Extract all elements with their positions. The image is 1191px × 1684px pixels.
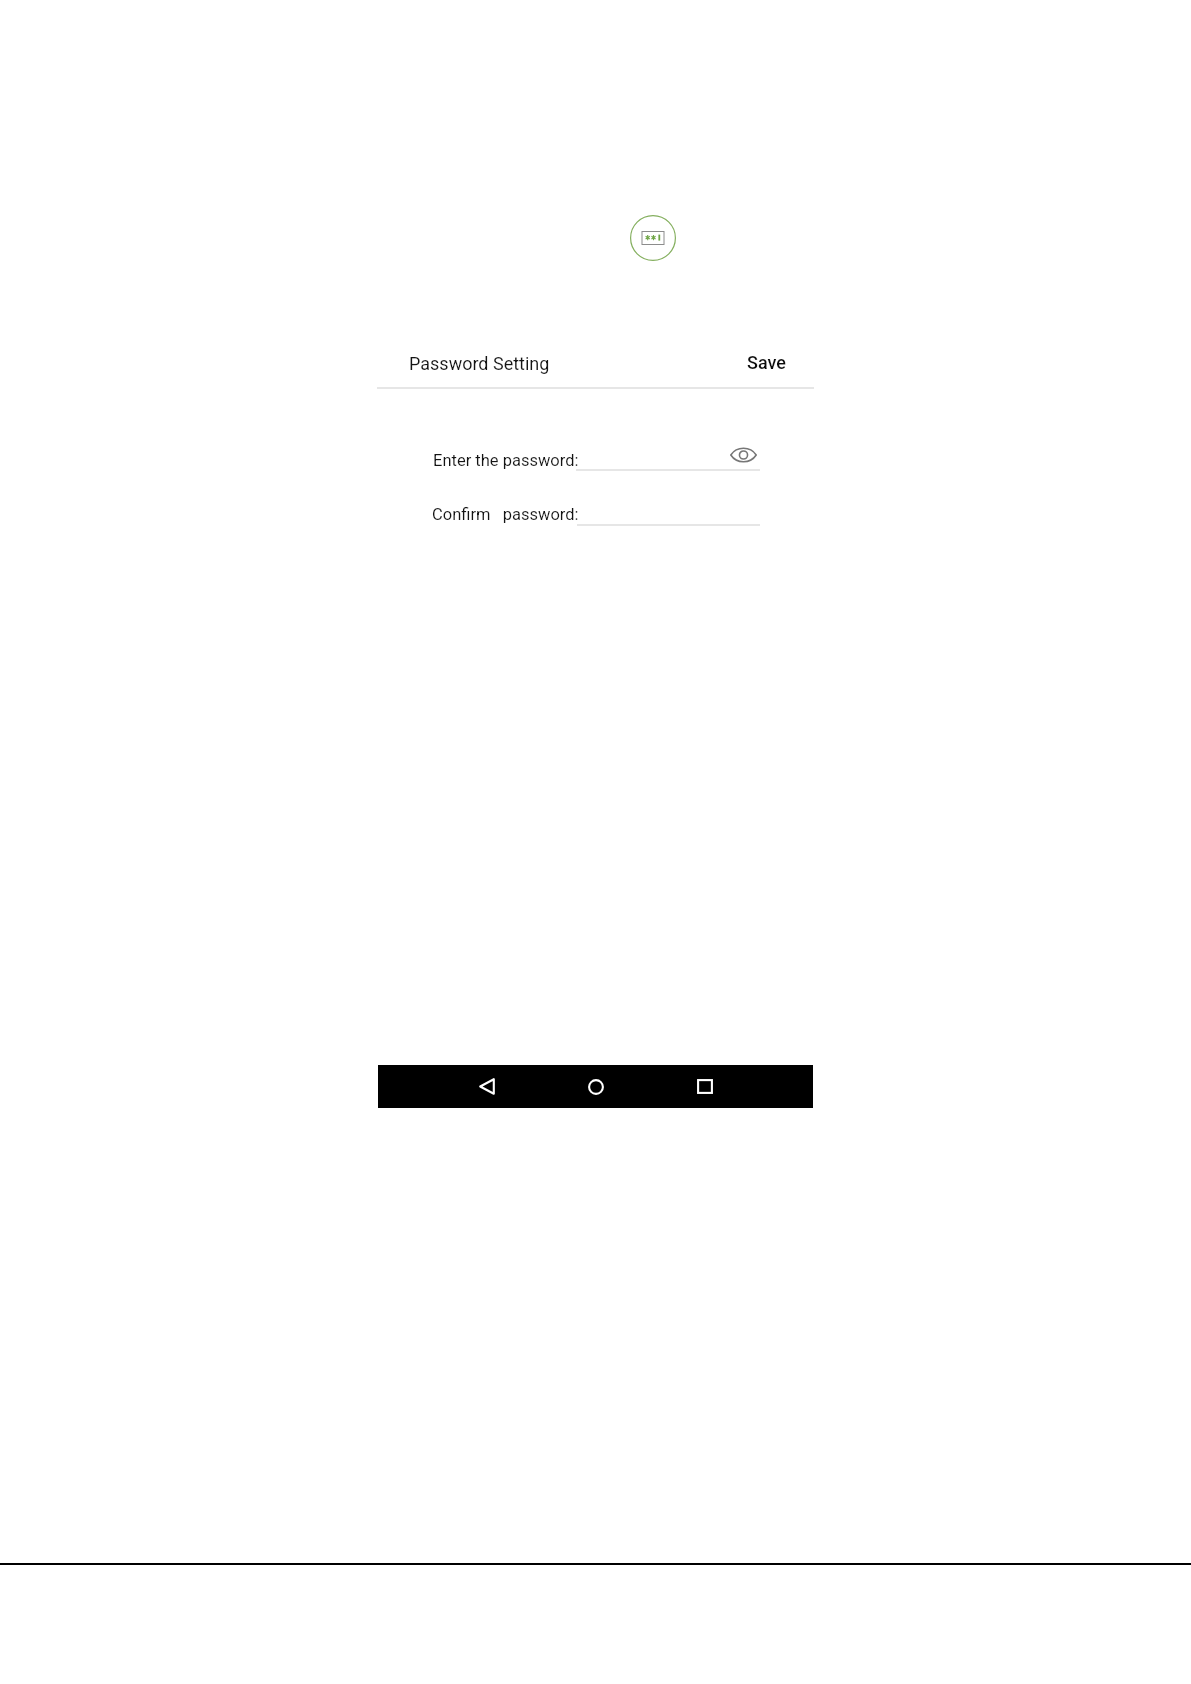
button[interactable]: Save [735,346,797,379]
staticText: Confirm password: [432,505,579,524]
button[interactable]: Back [471,1069,503,1104]
button[interactable]: Confirm password: [422,501,582,527]
button[interactable]: Enter the password: [423,447,583,473]
button[interactable]: Recent apps [689,1069,721,1104]
button[interactable]: Password app logo [630,215,676,261]
button[interactable]: Show password [727,442,759,468]
staticText: Enter the password: [433,451,579,470]
button[interactable]: Password Setting [399,347,559,380]
staticText: Password Setting [409,353,550,374]
staticText: Save [747,352,786,373]
button[interactable]: Home [580,1069,612,1104]
